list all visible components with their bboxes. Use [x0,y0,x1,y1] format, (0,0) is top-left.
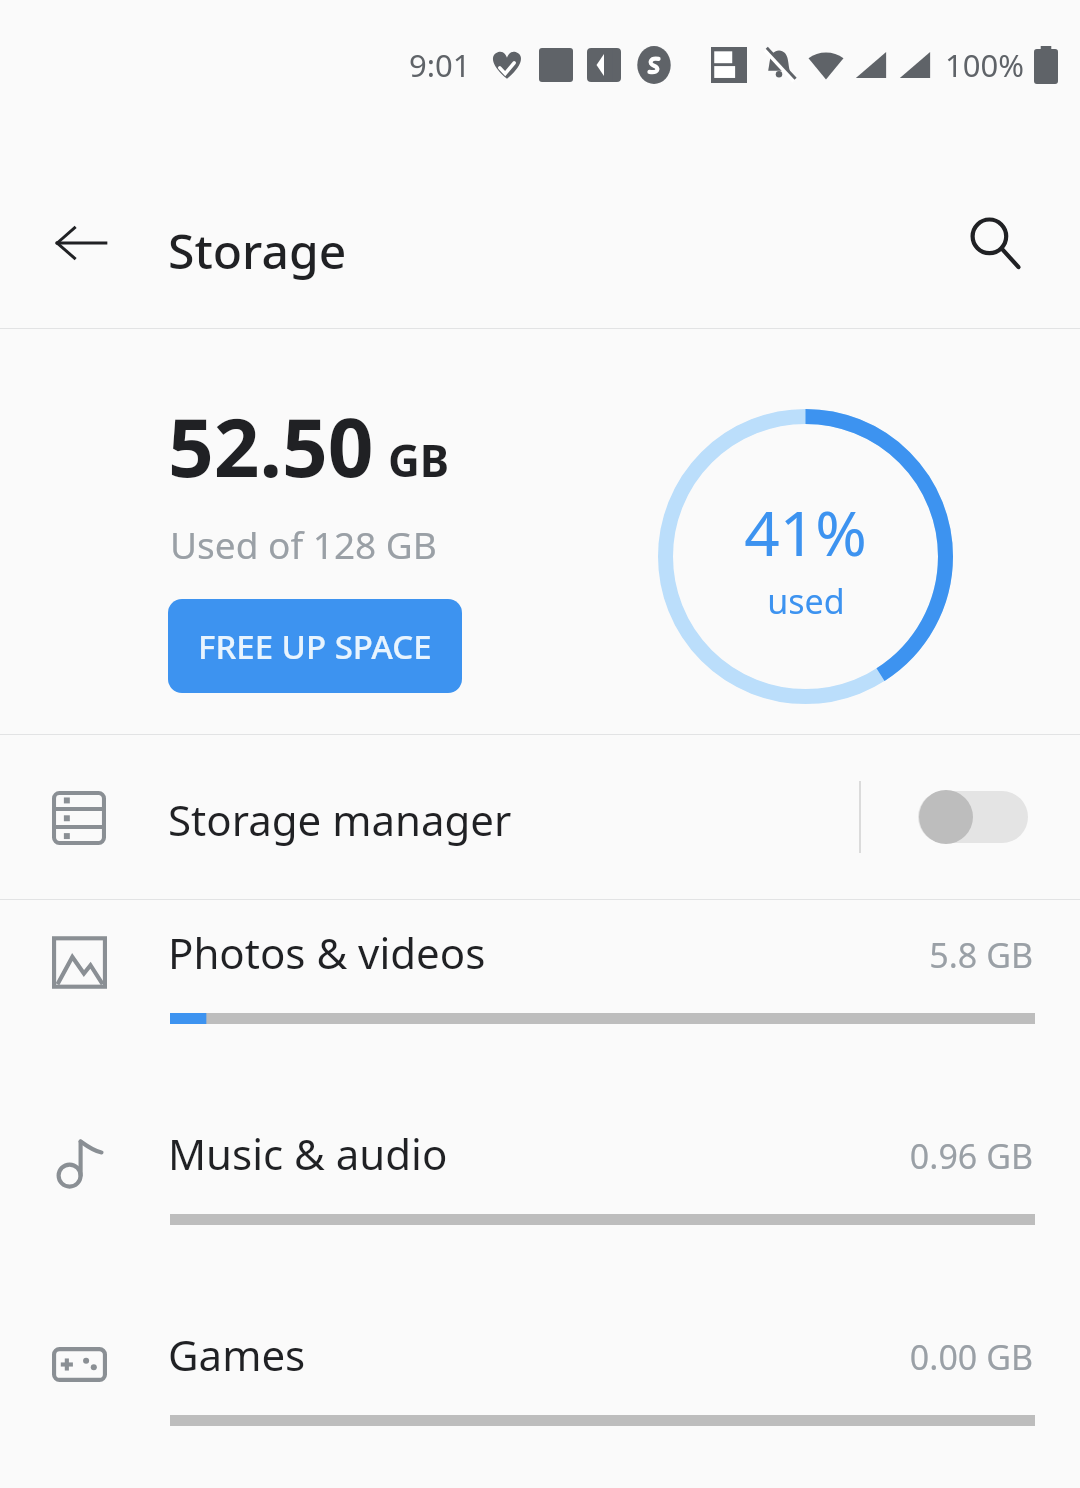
staticText: Used of 128 GB [170,519,437,569]
staticText: 100% [945,44,1024,86]
button[interactable]: Back [36,198,126,288]
button[interactable]: Music & audio [0,1101,1080,1302]
staticText: Music & audio [168,1125,448,1182]
button[interactable]: FREE UP SPACE [168,599,462,693]
staticText: used [767,578,845,624]
staticText: 0.96 GB [790,1133,1033,1179]
button[interactable]: Search [950,198,1040,288]
staticText: 52.50 [168,391,374,500]
staticText: FREE UP SPACE [198,624,432,669]
staticText: GB [388,430,450,490]
staticText: 0.00 GB [790,1334,1033,1380]
staticText: Storage [168,218,347,283]
staticText: 5.8 GB [790,932,1033,978]
staticText: 41% [744,490,867,574]
staticText: 9:01 [409,44,471,86]
staticText: Games [168,1326,306,1383]
button[interactable]: Games [0,1302,1080,1488]
staticText: Storage manager [168,791,512,848]
button[interactable]: Photos & videos [0,900,1080,1101]
button[interactable]: Storage manager [0,735,1080,899]
button[interactable]: Storage manager toggle [900,777,1030,857]
staticText: Photos & videos [168,924,486,981]
